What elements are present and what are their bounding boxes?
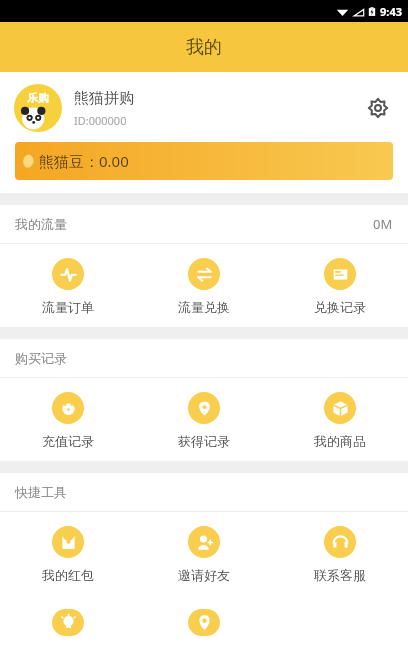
button[interactable]: 获得记录 <box>136 392 272 449</box>
staticText: 获得记录 <box>178 433 230 449</box>
staticText: 我的红包 <box>42 567 94 583</box>
staticText: ID:000000 <box>74 113 127 128</box>
button[interactable]: 联系客服 <box>272 526 408 583</box>
staticText: 联系客服 <box>314 567 366 583</box>
staticText: 熊猫拼购 <box>74 89 134 108</box>
staticText: 9:43 <box>380 4 402 19</box>
staticText: 流量订单 <box>42 299 94 315</box>
button[interactable]: Settings <box>360 90 396 126</box>
staticText: 流量兑换 <box>178 299 230 315</box>
staticText: 我的流量 <box>15 216 67 232</box>
staticText: 0M <box>373 215 393 233</box>
button[interactable]: 帮助中心 <box>0 609 136 636</box>
button[interactable]: 熊猫豆：0.00 <box>15 142 393 180</box>
staticText: 快捷工具 <box>15 484 67 500</box>
staticText: 兑换记录 <box>314 299 366 315</box>
staticText: 我的 <box>186 36 222 59</box>
staticText: 购买记录 <box>15 350 67 366</box>
staticText: 乐购 <box>27 91 49 105</box>
button[interactable]: 邀请好友 <box>136 526 272 583</box>
button[interactable]: 流量兑换 <box>136 258 272 315</box>
staticText: 熊猫豆：0.00 <box>39 151 129 171</box>
button[interactable]: 我的商品 <box>272 392 408 449</box>
button[interactable]: 我的红包 <box>0 526 136 583</box>
button[interactable]: 收货地址 <box>136 609 272 636</box>
staticText: 邀请好友 <box>178 567 230 583</box>
staticText: 我的商品 <box>314 433 366 449</box>
button[interactable]: 兑换记录 <box>272 258 408 315</box>
button[interactable]: 头像 <box>14 84 62 132</box>
button[interactable]: 流量订单 <box>0 258 136 315</box>
staticText: 充值记录 <box>42 433 94 449</box>
button[interactable]: 充值记录 <box>0 392 136 449</box>
